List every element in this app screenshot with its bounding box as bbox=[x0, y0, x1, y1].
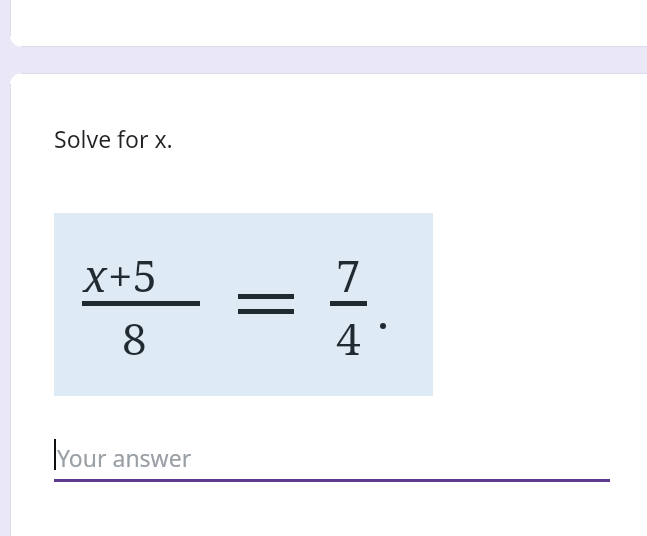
staticText: 8 bbox=[122, 308, 147, 368]
button[interactable]: Your answer bbox=[54, 430, 610, 482]
staticText: Solve for x. bbox=[54, 123, 173, 154]
staticText: 7 bbox=[336, 245, 361, 305]
button[interactable] bbox=[10, 0, 647, 47]
staticText: Your answer bbox=[57, 442, 192, 473]
button[interactable]: Solve for x. bbox=[10, 73, 647, 536]
staticText: +5 bbox=[108, 245, 158, 305]
staticText: x bbox=[83, 245, 108, 305]
staticText: 4 bbox=[336, 308, 361, 368]
